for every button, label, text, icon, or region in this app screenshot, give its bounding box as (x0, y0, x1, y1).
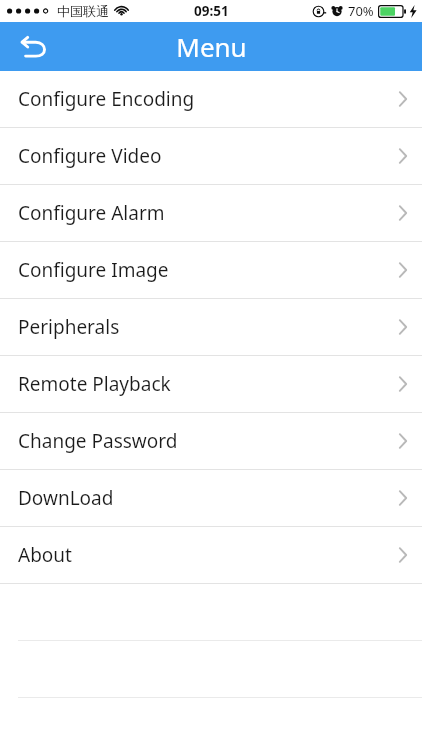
staticText: Configure Image (18, 257, 169, 283)
staticText: Configure Video (18, 143, 162, 169)
button[interactable]: Peripherals (0, 299, 422, 355)
staticText: Menu (176, 29, 247, 64)
button[interactable]: Change Password (0, 413, 422, 469)
staticText: Change Password (18, 428, 178, 454)
button[interactable]: Configure Alarm (0, 185, 422, 241)
button[interactable]: Configure Video (0, 128, 422, 184)
button[interactable]: About (0, 527, 422, 583)
staticText: 70% (348, 2, 374, 20)
button[interactable]: Configure Encoding (0, 71, 422, 127)
staticText: 09:51 (194, 2, 229, 20)
staticText: Peripherals (18, 314, 120, 340)
staticText: About (18, 542, 72, 568)
staticText: DownLoad (18, 485, 114, 511)
button[interactable]: DownLoad (0, 470, 422, 526)
button[interactable]: Back (10, 23, 58, 71)
staticText: Configure Encoding (18, 86, 195, 112)
staticText: Remote Playback (18, 371, 171, 397)
staticText: 中国联通 (57, 3, 109, 19)
button[interactable]: Configure Image (0, 242, 422, 298)
staticText: Configure Alarm (18, 200, 165, 226)
button[interactable]: Remote Playback (0, 356, 422, 412)
